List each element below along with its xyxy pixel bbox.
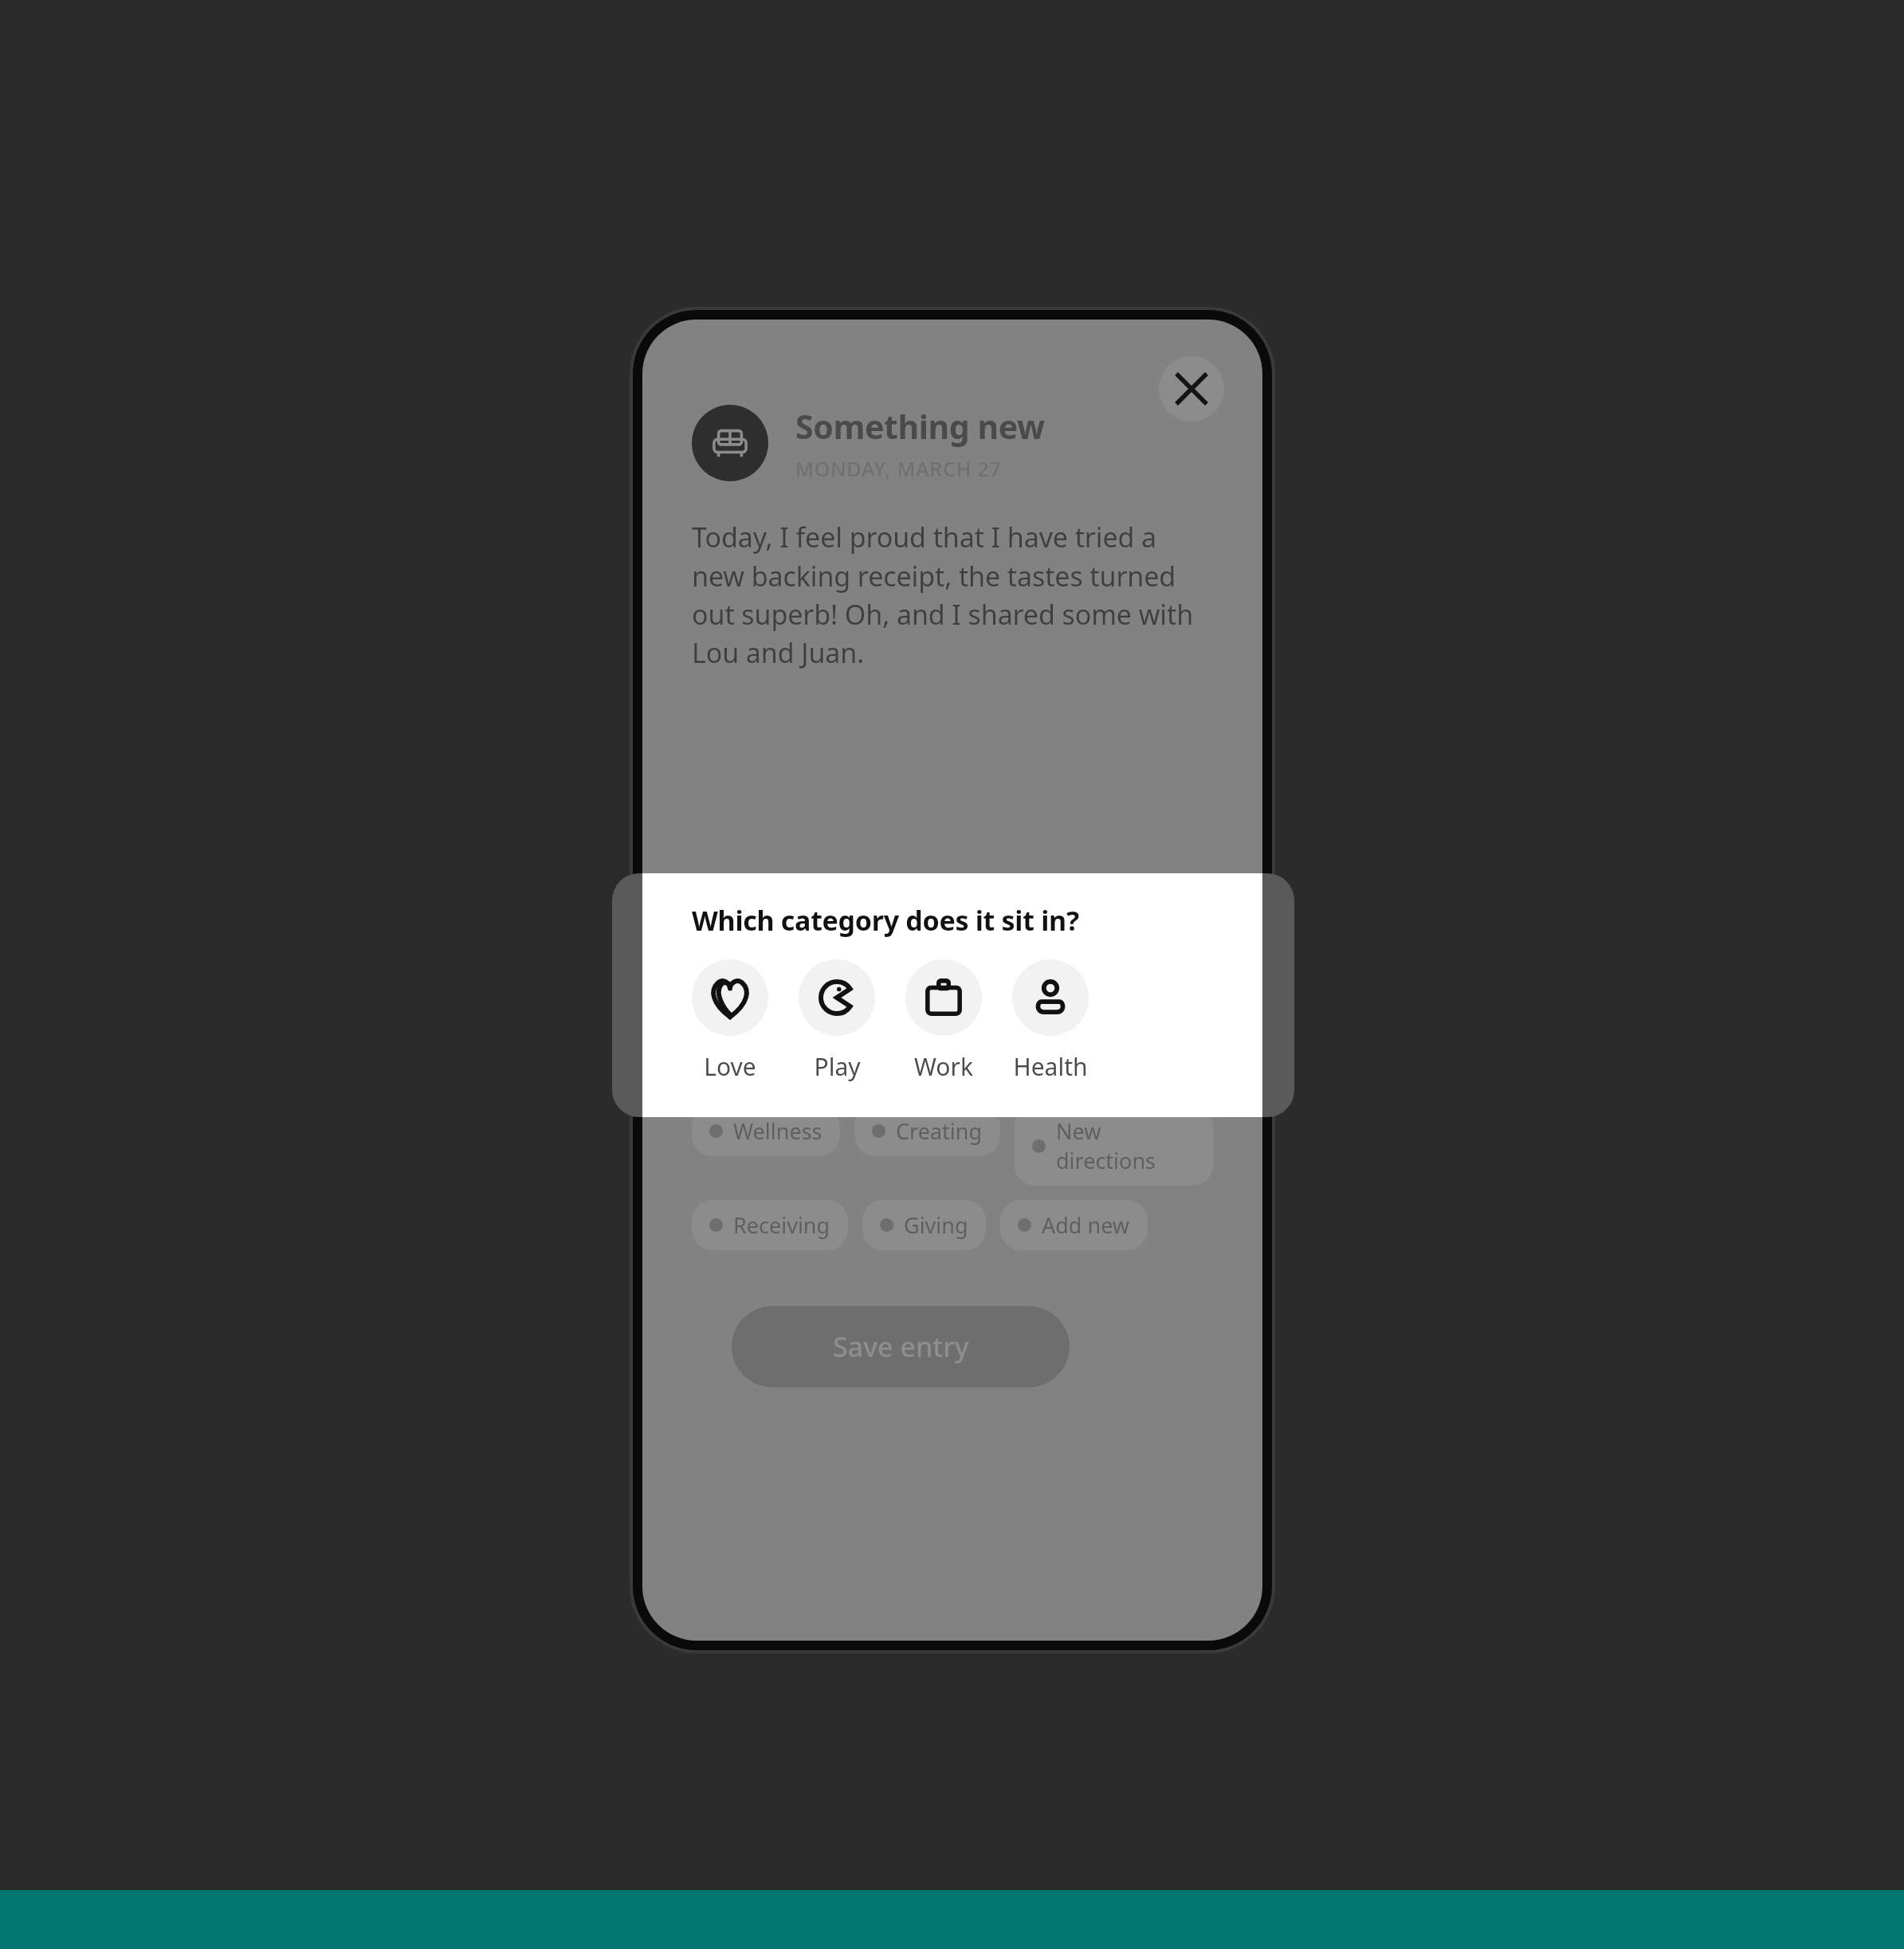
button[interactable]: New directions: [1015, 1106, 1213, 1186]
button[interactable]: Health: [1012, 959, 1089, 1083]
button[interactable]: Work: [905, 959, 982, 1083]
staticText: Something new: [795, 404, 1045, 449]
button[interactable]: Love: [692, 959, 768, 1083]
other: Health: [1031, 978, 1070, 1018]
other: Work: [925, 978, 963, 1017]
staticText: Save entry: [833, 1328, 969, 1365]
button[interactable]: Wellness: [692, 1106, 840, 1156]
button[interactable]: Close: [1159, 356, 1224, 422]
button[interactable]: Creating: [854, 1106, 1000, 1156]
staticText: New directions: [1056, 1116, 1195, 1175]
staticText: MONDAY, MARCH 27: [795, 455, 1002, 482]
button[interactable]: Add new: [1000, 1200, 1148, 1250]
staticText: Creating: [896, 1116, 983, 1146]
staticText: Which category does it sit in?: [692, 902, 1079, 939]
staticText: Today, I feel proud that I have tried a …: [692, 519, 1213, 671]
staticText: Health: [1013, 1050, 1088, 1083]
button[interactable]: Save entry: [732, 1306, 1070, 1387]
staticText: Wellness: [733, 1116, 822, 1146]
staticText: Love: [704, 1050, 756, 1083]
button[interactable]: Giving: [862, 1200, 986, 1250]
button[interactable]: Receiving: [692, 1200, 848, 1250]
staticText: Play: [814, 1050, 861, 1083]
other: Play: [817, 978, 857, 1018]
staticText: Receiving: [733, 1210, 830, 1240]
other: Love: [709, 977, 751, 1018]
staticText: Work: [914, 1050, 973, 1083]
staticText: Add new: [1042, 1210, 1130, 1240]
staticText: Which areas does it cover?: [692, 1047, 1042, 1084]
staticText: Giving: [904, 1210, 968, 1240]
button[interactable]: Play: [799, 959, 875, 1083]
